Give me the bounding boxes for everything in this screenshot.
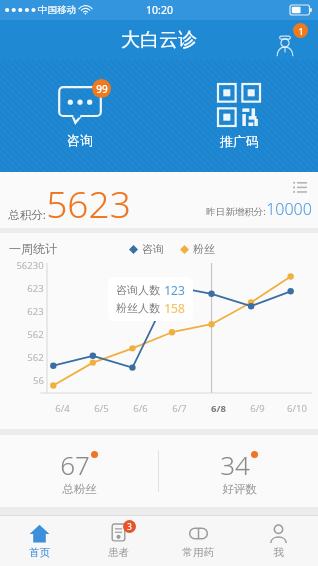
staticText: 6/6 xyxy=(133,402,148,415)
staticText: 158 xyxy=(164,300,185,316)
staticText: 6/4 xyxy=(55,402,70,415)
button[interactable]: 67 xyxy=(0,435,158,507)
staticText: 粉丝 xyxy=(193,242,215,256)
button[interactable]: 3 xyxy=(79,516,158,566)
staticText: 1 xyxy=(298,25,304,37)
staticText: 大白云诊 xyxy=(121,28,197,52)
staticText: 6/8 xyxy=(211,402,226,415)
staticText: 10000 xyxy=(266,198,312,220)
staticText: 总积分: xyxy=(8,207,46,223)
staticText: 56 xyxy=(33,374,44,387)
button[interactable]: Points detail list xyxy=(290,177,310,197)
staticText: 562 xyxy=(27,351,44,364)
button[interactable]: Doctor profile xyxy=(274,23,308,57)
staticText: 好评数 xyxy=(222,482,257,496)
staticText: 患者 xyxy=(108,546,129,559)
staticText: 6/10 xyxy=(287,402,307,415)
button[interactable]: 99 xyxy=(51,79,109,154)
staticText: 总粉丝 xyxy=(62,482,97,496)
staticText: 562 xyxy=(27,328,44,341)
staticText: 咨询人数 xyxy=(116,283,160,297)
staticText: 中国移动 xyxy=(38,4,76,16)
staticText: 6/9 xyxy=(250,402,265,415)
staticText: 67 xyxy=(60,447,90,482)
staticText: 56230 xyxy=(16,259,44,272)
button[interactable]: 推广码 xyxy=(212,78,266,155)
staticText: 粉丝人数 xyxy=(116,301,160,315)
staticText: 推广码 xyxy=(220,133,259,149)
staticText: 常用药 xyxy=(182,546,214,559)
staticText: 99 xyxy=(96,82,108,96)
staticText: 123 xyxy=(164,282,185,298)
staticText: 6/7 xyxy=(172,402,187,415)
button[interactable]: 我 xyxy=(238,516,318,566)
staticText: 首页 xyxy=(29,546,50,559)
staticText: 一周统计 xyxy=(9,241,57,256)
staticText: 34 xyxy=(220,447,250,482)
button[interactable]: 常用药 xyxy=(158,516,238,566)
staticText: 咨询 xyxy=(67,132,93,148)
staticText: 咨询 xyxy=(142,242,164,256)
button[interactable]: 34 xyxy=(159,435,318,507)
staticText: 623 xyxy=(27,305,44,318)
staticText: 10:20 xyxy=(146,3,173,17)
staticText: 6/5 xyxy=(94,402,109,415)
staticText: 我 xyxy=(273,546,284,559)
button[interactable]: 首页 xyxy=(0,516,79,566)
staticText: 昨日新增积分: xyxy=(206,205,266,218)
staticText: 623 xyxy=(27,282,44,295)
staticText: 3 xyxy=(127,521,132,532)
staticText: 5623 xyxy=(46,178,131,228)
